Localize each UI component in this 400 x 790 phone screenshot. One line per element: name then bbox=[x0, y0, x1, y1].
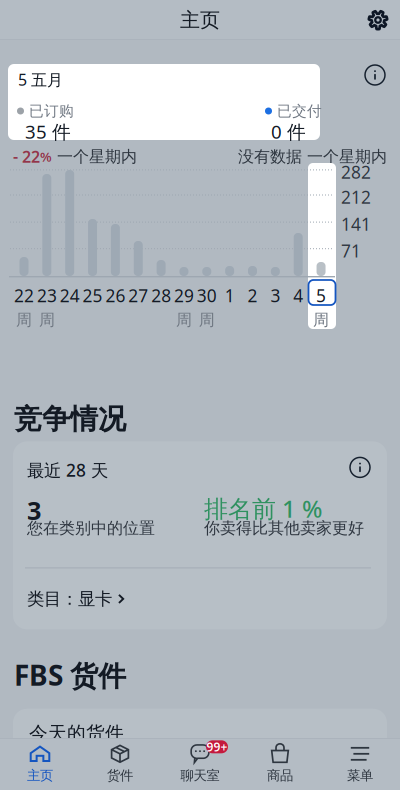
staticText: 5 bbox=[316, 284, 326, 307]
staticText: 聊天室 bbox=[180, 767, 219, 784]
staticText: FBS 货件 bbox=[14, 656, 126, 694]
staticText: 您在类别中的位置 bbox=[27, 518, 155, 538]
staticText: 28 bbox=[151, 284, 171, 307]
staticText: 29 bbox=[174, 284, 194, 307]
staticText: % bbox=[40, 148, 52, 165]
staticText: 今天的货件 bbox=[29, 722, 124, 745]
staticText: 菜单 bbox=[347, 767, 373, 784]
staticText: 2 bbox=[247, 284, 257, 307]
button[interactable]: 菜单 bbox=[320, 738, 400, 790]
staticText: 周 bbox=[16, 310, 32, 330]
staticText: 282 bbox=[341, 160, 371, 183]
staticText: 货件 bbox=[107, 767, 133, 784]
staticText: 最近 28 天 bbox=[27, 458, 108, 481]
staticText: 30 bbox=[197, 284, 217, 307]
staticText: 周 bbox=[39, 310, 55, 330]
staticText: 竞争情况 bbox=[14, 402, 126, 436]
staticText: 显卡 bbox=[78, 588, 112, 609]
staticText: 26 bbox=[105, 284, 125, 307]
staticText: 3 bbox=[27, 493, 41, 527]
staticText: 周 bbox=[313, 310, 329, 330]
staticText: 4 bbox=[293, 284, 303, 307]
staticText: 1 bbox=[225, 284, 235, 307]
staticText: 25 bbox=[83, 284, 103, 307]
staticText: 22 bbox=[14, 284, 34, 307]
staticText: 周 bbox=[176, 310, 192, 330]
staticText: 已订购 bbox=[29, 102, 74, 120]
staticText: 23 bbox=[37, 284, 57, 307]
staticText: 35 件 bbox=[25, 119, 71, 144]
staticText: 商品 bbox=[267, 767, 293, 784]
staticText: 主页 bbox=[180, 8, 220, 32]
staticText: 99+ bbox=[206, 739, 227, 755]
button[interactable]: 主页 bbox=[0, 738, 80, 790]
staticText: 24 bbox=[60, 284, 80, 307]
staticText: 周 bbox=[199, 310, 215, 330]
staticText: 0 件 bbox=[271, 119, 306, 144]
staticText: 212 bbox=[341, 185, 371, 208]
staticText: 排名前 1 % bbox=[204, 492, 322, 524]
staticText: 没有数据 一个星期内 bbox=[238, 147, 387, 166]
button[interactable]: 设置 bbox=[367, 0, 400, 40]
staticText: 3 bbox=[270, 284, 280, 307]
button[interactable]: 货件 bbox=[80, 738, 160, 790]
button[interactable]: 信息 bbox=[359, 59, 391, 91]
staticText: 141 bbox=[341, 213, 371, 236]
staticText: 一个星期内 bbox=[52, 147, 137, 166]
staticText: 类目： bbox=[27, 588, 78, 609]
staticText: 5 五月 bbox=[18, 69, 63, 90]
staticText: 27 bbox=[128, 284, 148, 307]
button[interactable]: 99+ bbox=[160, 738, 240, 790]
staticText: 你卖得比其他卖家更好 bbox=[204, 518, 364, 538]
staticText: - 22 bbox=[13, 146, 40, 167]
button[interactable]: 信息 bbox=[350, 457, 370, 477]
button[interactable]: 商品 bbox=[240, 738, 320, 790]
staticText: 已交付 bbox=[277, 102, 322, 120]
staticText: 71 bbox=[341, 239, 361, 262]
staticText: 主页 bbox=[27, 767, 53, 784]
button[interactable]: 类目： bbox=[13, 568, 387, 629]
